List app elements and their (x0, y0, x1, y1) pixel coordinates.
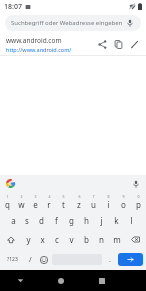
staticText: 9 (122, 194, 125, 199)
button[interactable]: Google (5, 178, 16, 189)
staticText: e (33, 199, 38, 210)
button[interactable]: Recent apps (81, 270, 122, 291)
button[interactable]: 9 (116, 192, 131, 211)
staticText: 3 (34, 194, 37, 199)
button[interactable]: Back (0, 270, 40, 291)
staticText: r (47, 199, 51, 210)
button[interactable]: d (34, 211, 49, 230)
staticText: s (25, 215, 29, 226)
button[interactable]: 6 (71, 192, 86, 211)
button[interactable]: Voice search (125, 18, 135, 28)
staticText: 4 (48, 194, 51, 199)
button[interactable]: Voice input (130, 178, 141, 189)
staticText: i (107, 199, 110, 210)
staticText: 6 (78, 194, 81, 199)
staticText: j (100, 215, 103, 226)
button[interactable]: x (35, 230, 49, 249)
button[interactable]: c (49, 230, 64, 249)
button[interactable]: Edit (126, 36, 142, 52)
staticText: h (84, 215, 89, 226)
staticText: 5 (62, 194, 65, 199)
button[interactable]: 2 (14, 192, 28, 211)
button[interactable]: / (23, 249, 37, 270)
staticText: w (18, 199, 25, 210)
staticText: ?123 (7, 256, 18, 263)
staticText: o (121, 199, 126, 210)
staticText: a (11, 215, 16, 226)
button[interactable]: 4 (42, 192, 56, 211)
staticText: g (69, 215, 74, 226)
staticText: 7 (92, 194, 95, 199)
staticText: n (99, 234, 104, 245)
button[interactable]: Shift (0, 230, 21, 249)
staticText: u (91, 199, 96, 210)
staticText: f (55, 215, 58, 226)
staticText: m (113, 234, 121, 245)
button[interactable]: b (79, 230, 94, 249)
staticText: q (5, 199, 10, 210)
staticText: b (84, 234, 89, 245)
button[interactable]: 8 (101, 192, 116, 211)
button[interactable]: Home (40, 270, 81, 291)
button[interactable]: Backspace (124, 230, 146, 249)
button[interactable]: g (64, 211, 79, 230)
button[interactable]: m (109, 230, 124, 249)
button[interactable]: Emoji (37, 249, 51, 270)
button[interactable]: s (20, 211, 34, 230)
staticText: Suchbegriff oder Webadresse eingeben (11, 19, 123, 27)
button[interactable]: y (21, 230, 35, 249)
staticText: x (40, 234, 45, 245)
button[interactable]: www.android.com (0, 33, 146, 55)
button[interactable]: 0 (131, 192, 146, 211)
staticText: 2 (20, 194, 23, 199)
button[interactable]: h (79, 211, 94, 230)
button[interactable]: ?123 (2, 249, 23, 270)
staticText: p (136, 199, 141, 210)
staticText: v (69, 234, 74, 245)
button[interactable]: j (94, 211, 109, 230)
staticText: http://www.android.com/ (6, 46, 72, 53)
button[interactable]: v (64, 230, 79, 249)
button[interactable]: a (6, 211, 20, 230)
button[interactable]: Copy (110, 36, 126, 52)
staticText: 18:07 (4, 2, 22, 12)
button[interactable]: 3 (28, 192, 42, 211)
button[interactable]: Share (94, 36, 110, 52)
button[interactable]: 1 (0, 192, 14, 211)
staticText: y (26, 234, 31, 245)
staticText: k (114, 215, 119, 226)
button[interactable]: . (103, 249, 117, 270)
staticText: www.android.com (6, 36, 62, 45)
staticText: c (55, 234, 59, 245)
staticText: l (130, 215, 133, 226)
button[interactable]: Suchbegriff oder Webadresse eingeben (5, 15, 141, 31)
staticText: . (109, 255, 111, 265)
button[interactable]: n (94, 230, 109, 249)
staticText: t (62, 199, 65, 210)
button[interactable]: f (49, 211, 64, 230)
button[interactable]: 7 (86, 192, 101, 211)
button[interactable]: l (124, 211, 139, 230)
button[interactable]: k (109, 211, 124, 230)
staticText: z (77, 199, 81, 210)
staticText: / (29, 255, 32, 265)
staticText: 1 (6, 194, 9, 199)
staticText: 8 (107, 194, 110, 199)
staticText: 0 (137, 194, 140, 199)
staticText: d (39, 215, 44, 226)
button[interactable]: Go (118, 253, 143, 266)
button[interactable]: 5 (56, 192, 71, 211)
